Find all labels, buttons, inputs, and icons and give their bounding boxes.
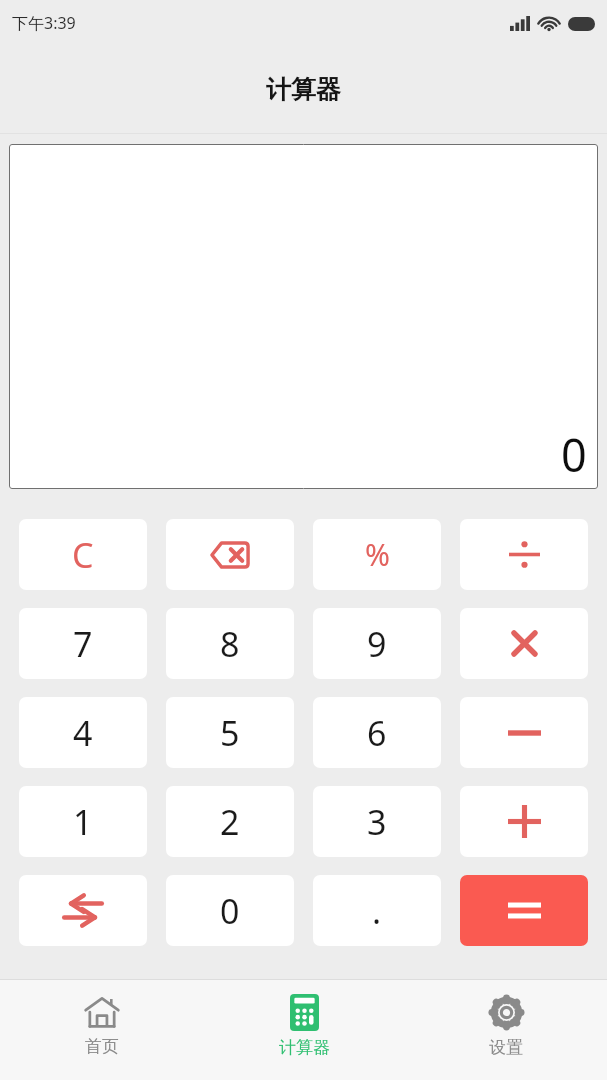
staticText: 计算器 xyxy=(266,74,341,105)
button[interactable] xyxy=(460,608,588,679)
staticText: 3 xyxy=(367,799,387,845)
staticText: 2 xyxy=(220,799,240,845)
button[interactable]: 5 xyxy=(166,697,294,768)
staticText: 5 xyxy=(220,710,240,756)
staticText: 1 xyxy=(73,799,93,845)
button[interactable]: Swap xyxy=(19,875,147,946)
button[interactable]: 3 xyxy=(313,786,441,857)
button[interactable]: 4 xyxy=(19,697,147,768)
staticText: 9 xyxy=(367,621,387,667)
staticText: 8 xyxy=(220,621,240,667)
button[interactable]: 2 xyxy=(166,786,294,857)
button[interactable]: 7 xyxy=(19,608,147,679)
button[interactable]: 计算器 xyxy=(203,980,405,1080)
staticText: % xyxy=(365,534,390,575)
staticText: 下午3:39 xyxy=(12,12,76,34)
staticText: 计算器 xyxy=(279,1037,330,1058)
staticText: 0 xyxy=(561,424,587,485)
button[interactable] xyxy=(460,697,588,768)
button[interactable] xyxy=(460,519,588,590)
staticText: 首页 xyxy=(85,1036,119,1057)
staticText: C xyxy=(72,532,94,578)
button[interactable]: C xyxy=(19,519,147,590)
button[interactable]: Backspace xyxy=(166,519,294,590)
button[interactable]: . xyxy=(313,875,441,946)
button[interactable] xyxy=(460,875,588,946)
button[interactable] xyxy=(460,786,588,857)
staticText: . xyxy=(372,888,382,934)
button[interactable]: 首页 xyxy=(0,980,203,1080)
button[interactable]: 1 xyxy=(19,786,147,857)
button[interactable]: 0 xyxy=(166,875,294,946)
button[interactable]: 8 xyxy=(166,608,294,679)
button[interactable]: % xyxy=(313,519,441,590)
button[interactable]: 设置 xyxy=(405,980,607,1080)
button[interactable]: 9 xyxy=(313,608,441,679)
button[interactable]: 6 xyxy=(313,697,441,768)
staticText: 7 xyxy=(73,621,93,667)
staticText: 设置 xyxy=(489,1037,523,1058)
staticText: 4 xyxy=(73,710,93,756)
staticText: 0 xyxy=(220,888,240,934)
staticText: 6 xyxy=(367,710,387,756)
